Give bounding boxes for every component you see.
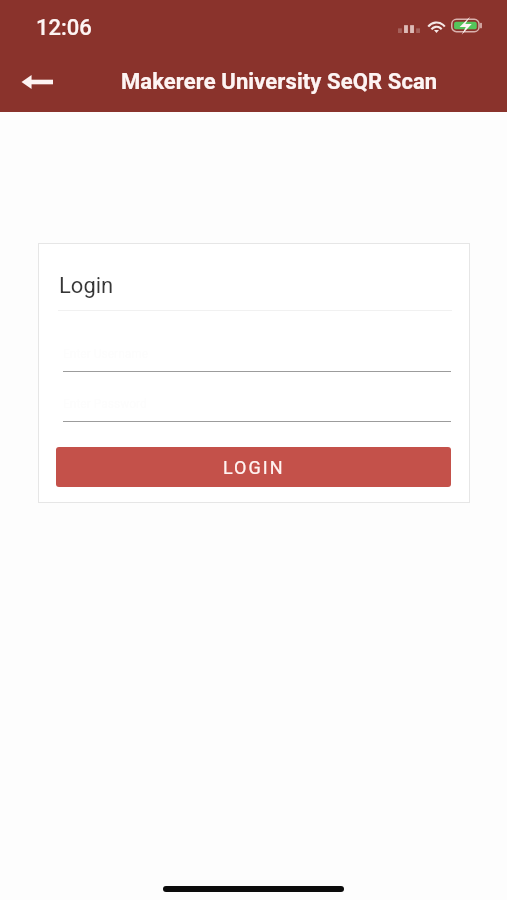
button[interactable]: Back [13,58,60,105]
button[interactable]: LOGIN [56,447,451,487]
staticText: LOGIN [223,457,285,478]
staticText: Makerere University SeQR Scan [121,69,438,95]
staticText: Login [59,273,114,299]
staticText: 12:06 [36,15,92,41]
